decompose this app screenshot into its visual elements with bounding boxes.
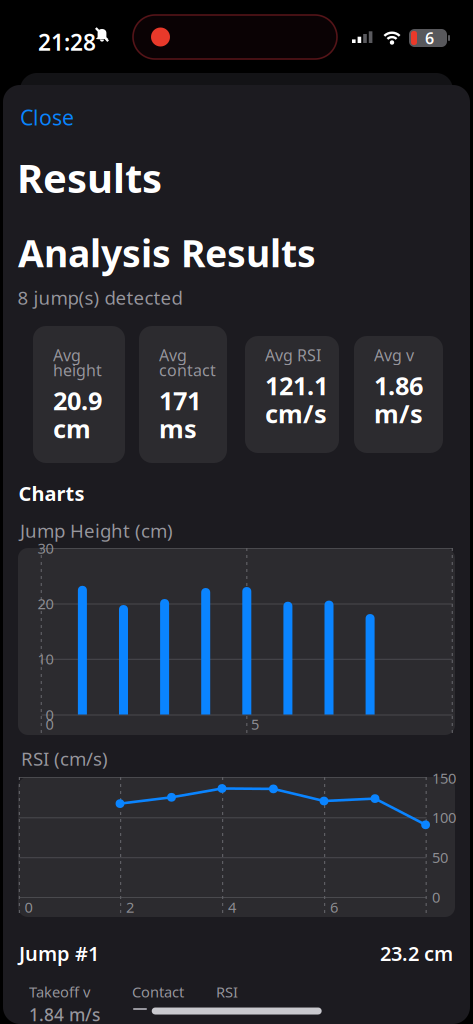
staticText: 6 xyxy=(425,27,434,49)
staticText: Avg RSI xyxy=(265,344,321,366)
staticText: 21:28 xyxy=(38,27,96,57)
staticText: 6 xyxy=(330,897,338,917)
button[interactable]: Jump #1 xyxy=(3,940,470,1024)
staticText: 0 xyxy=(24,897,32,917)
staticText: Avg xyxy=(159,344,187,366)
staticText: 8 jump(s) detected xyxy=(17,285,182,310)
staticText: 10 xyxy=(37,649,53,669)
staticText: 0 xyxy=(45,714,53,734)
staticText: RSI xyxy=(216,982,238,1001)
staticText: 1.86 xyxy=(374,368,423,402)
staticText: 1.84 m/s xyxy=(29,1003,100,1024)
staticText: 2 xyxy=(126,897,134,917)
staticText: 171 xyxy=(159,383,201,417)
staticText: 0 xyxy=(45,705,53,724)
staticText: 23.2 cm xyxy=(380,940,453,967)
staticText: Jump #1 xyxy=(19,940,99,967)
staticText: 20 xyxy=(37,594,53,613)
staticText: Results xyxy=(17,151,162,204)
staticText: Avg xyxy=(53,344,81,366)
staticText: 5 xyxy=(251,714,259,734)
staticText: 150 xyxy=(432,768,456,788)
staticText: Takeoff v xyxy=(29,982,90,1001)
staticText: cm/s xyxy=(265,396,327,430)
staticText: m/s xyxy=(374,396,423,430)
staticText: RSI (cm/s) xyxy=(21,746,108,771)
staticText: Analysis Results xyxy=(18,228,316,278)
staticText: 4 xyxy=(228,897,236,917)
staticText: 121.1 xyxy=(265,368,328,402)
staticText: height xyxy=(53,359,102,381)
staticText: 50 xyxy=(432,847,448,867)
staticText: cm xyxy=(53,411,91,445)
staticText: 30 xyxy=(37,538,53,558)
staticText: contact xyxy=(159,359,216,381)
staticText: Avg v xyxy=(374,344,414,366)
staticText: Close xyxy=(20,103,74,131)
button[interactable]: Close xyxy=(3,85,84,139)
staticText: 0 xyxy=(432,887,440,907)
staticText: 20.9 xyxy=(53,383,102,417)
staticText: Charts xyxy=(18,480,84,507)
staticText: Jump Height (cm) xyxy=(20,518,173,543)
staticText: Contact xyxy=(132,982,184,1001)
staticText: ms xyxy=(159,411,197,445)
staticText: 100 xyxy=(432,808,456,827)
